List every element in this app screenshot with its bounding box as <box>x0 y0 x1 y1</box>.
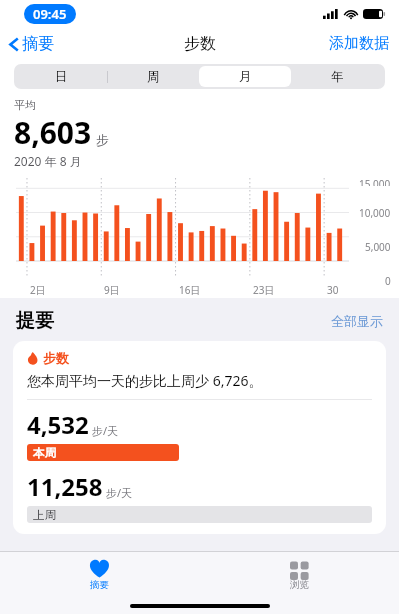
staticText: 摘要 <box>90 579 109 591</box>
button[interactable]: 月 <box>199 66 291 87</box>
button[interactable]: 周 <box>107 66 199 87</box>
staticText: 步/天 <box>106 485 133 500</box>
staticText: 您本周平均一天的步比上周少 6,726。 <box>27 371 263 390</box>
staticText: 上周 <box>33 508 56 522</box>
button[interactable]: 日 <box>16 66 107 87</box>
staticText: 16日 <box>179 283 201 297</box>
button[interactable]: 浏览 <box>268 556 331 594</box>
staticText: 添加数据 <box>329 34 389 53</box>
staticText: 4,532 <box>27 408 89 441</box>
staticText: 步数 <box>184 34 216 54</box>
staticText: 步 <box>96 132 109 148</box>
staticText: 月 <box>239 69 252 85</box>
staticText: 0 <box>385 274 391 288</box>
staticText: 浏览 <box>290 579 309 591</box>
staticText: 15,000 <box>359 177 391 186</box>
button[interactable]: 步数 <box>13 341 386 534</box>
staticText: 全部显示 <box>331 313 383 329</box>
staticText: 30 <box>327 283 339 297</box>
staticText: 年 <box>331 69 344 85</box>
staticText: 平均 <box>14 98 36 112</box>
staticText: 日 <box>55 69 68 85</box>
button[interactable]: 年 <box>291 66 383 87</box>
button[interactable]: 全部显示 <box>327 309 387 333</box>
staticText: 9日 <box>104 283 120 297</box>
staticText: 11,258 <box>27 470 103 503</box>
staticText: 周 <box>147 69 160 85</box>
staticText: 摘要 <box>22 34 54 54</box>
staticText: 步/天 <box>92 423 119 438</box>
staticText: 23日 <box>253 283 275 297</box>
staticText: 提要 <box>16 309 54 333</box>
staticText: 步数 <box>43 350 69 366</box>
staticText: 5,000 <box>365 240 391 254</box>
staticText: 本周 <box>33 446 56 460</box>
staticText: 8,603 <box>14 112 92 153</box>
staticText: 2020 年 8 月 <box>14 153 82 169</box>
button[interactable]: 添加数据 <box>319 30 399 57</box>
staticText: 10,000 <box>359 206 391 220</box>
button[interactable]: 摘要 <box>66 556 133 594</box>
staticText: 2日 <box>30 283 46 297</box>
button[interactable]: 摘要 <box>0 30 62 58</box>
staticText: 09:45 <box>33 5 67 23</box>
